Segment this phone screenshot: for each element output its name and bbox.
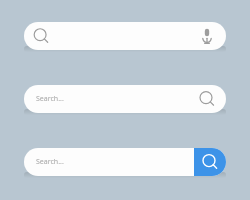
- button[interactable]: Voice search: [196, 25, 218, 47]
- staticText: Search...: [36, 157, 64, 167]
- button[interactable]: Search...: [24, 148, 226, 176]
- staticText: Search...: [36, 94, 64, 104]
- button[interactable]: Search: [197, 89, 217, 109]
- button[interactable]: Search: [24, 22, 226, 50]
- button[interactable]: Search: [194, 148, 226, 176]
- button[interactable]: Search: [30, 25, 52, 47]
- button[interactable]: Search...: [24, 85, 226, 113]
